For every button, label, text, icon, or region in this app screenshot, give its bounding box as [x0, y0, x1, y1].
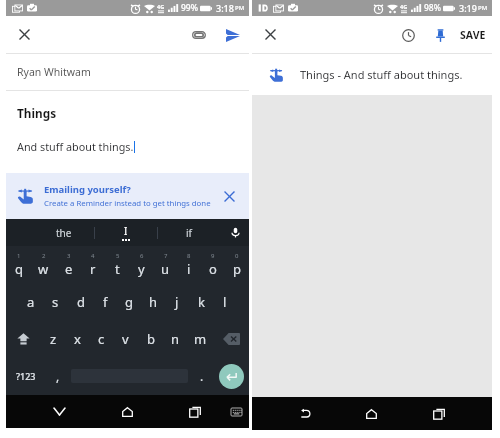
button[interactable]: j [165, 283, 189, 320]
button[interactable]: SAVE [460, 28, 486, 42]
staticText: PM [478, 4, 488, 12]
staticText: t [115, 260, 120, 278]
button[interactable]: Home [93, 395, 161, 428]
button[interactable]: Backspace [213, 320, 249, 357]
staticText: c [98, 330, 105, 348]
staticText: if [186, 226, 193, 240]
button[interactable]: Back [272, 397, 338, 430]
staticText: 99% [181, 2, 198, 14]
button[interactable]: Dismiss [214, 181, 244, 211]
button[interactable]: Voice input [221, 219, 249, 246]
button[interactable]: c [89, 320, 113, 357]
button[interactable]: Shift [6, 320, 41, 357]
staticText: 4G [157, 3, 165, 10]
button[interactable]: , [46, 357, 69, 395]
button[interactable]: 5 [105, 246, 129, 283]
button[interactable]: Set time [392, 19, 424, 51]
button[interactable]: Switch keyboard [223, 395, 249, 428]
staticText: b [147, 330, 155, 348]
button[interactable]: n [163, 320, 188, 357]
staticText: h [149, 293, 158, 311]
button[interactable]: Enter [219, 364, 244, 389]
staticText: v [122, 330, 129, 348]
button[interactable]: Emailing yourself? [6, 173, 249, 219]
button[interactable]: 1 [6, 246, 31, 283]
staticText: d [77, 293, 85, 311]
staticText: 3:19 [459, 2, 477, 14]
staticText: 0 [235, 252, 239, 260]
staticText: 5 [116, 252, 120, 260]
button[interactable]: . [190, 357, 213, 395]
button[interactable]: z [41, 320, 65, 357]
staticText: Things - And stuff about things. [300, 67, 463, 82]
button[interactable]: 2 [31, 246, 56, 283]
button[interactable]: l [213, 283, 237, 320]
button[interactable]: s [43, 283, 68, 320]
button[interactable]: Send [217, 19, 249, 51]
button[interactable]: 7 [153, 246, 177, 283]
button[interactable]: Home [338, 397, 405, 430]
button[interactable]: 0 [225, 246, 249, 283]
staticText: Create a Reminder instead to get things … [44, 198, 211, 209]
button[interactable]: 3 [56, 246, 81, 283]
staticText: 6 [140, 252, 144, 260]
staticText: PM [235, 4, 245, 12]
staticText: . [200, 368, 204, 384]
staticText: z [50, 330, 57, 348]
button[interactable]: Attach file [183, 19, 215, 51]
button[interactable]: b [138, 320, 163, 357]
button[interactable]: Recent apps [161, 395, 229, 428]
staticText: o [209, 260, 217, 278]
button[interactable]: d [68, 283, 93, 320]
staticText: e [65, 260, 73, 278]
button[interactable]: I [95, 219, 157, 246]
button[interactable]: Recent apps [405, 397, 472, 430]
staticText: f [103, 293, 108, 311]
staticText: s [52, 293, 59, 311]
button[interactable]: a [18, 283, 43, 320]
button[interactable]: the [33, 219, 94, 246]
staticText: g [125, 293, 133, 311]
button[interactable]: Close [6, 16, 43, 53]
button[interactable]: g [117, 283, 141, 320]
staticText: the [56, 226, 72, 240]
button[interactable]: f [93, 283, 117, 320]
button[interactable]: Back [26, 395, 93, 428]
button[interactable]: h [141, 283, 165, 320]
staticText: j [175, 293, 179, 311]
button[interactable]: x [65, 320, 89, 357]
staticText: p [233, 260, 241, 278]
staticText: i [187, 260, 191, 278]
button[interactable]: 8 [177, 246, 201, 283]
staticText: ?123 [16, 370, 36, 382]
staticText: 3 [67, 252, 71, 260]
button[interactable]: if [158, 219, 220, 246]
button[interactable]: Close [252, 16, 289, 53]
staticText: n [171, 330, 180, 348]
staticText: 9 [211, 252, 215, 260]
button[interactable]: 6 [129, 246, 153, 283]
button[interactable]: m [188, 320, 213, 357]
button[interactable]: Pin [424, 19, 456, 51]
button[interactable]: v [113, 320, 138, 357]
button[interactable]: 4 [81, 246, 105, 283]
button[interactable]: k [189, 283, 213, 320]
staticText: q [15, 260, 23, 278]
staticText: 1 [17, 252, 21, 260]
staticText: y [138, 260, 145, 278]
staticText: SAVE [460, 28, 486, 42]
staticText: 7 [164, 252, 168, 260]
button[interactable]: ?123 [6, 357, 46, 395]
staticText: And stuff about things. [17, 139, 134, 154]
staticText: u [161, 260, 170, 278]
button[interactable]: 9 [201, 246, 225, 283]
staticText: 4G [400, 3, 408, 10]
staticText: I [124, 224, 128, 238]
staticText: k [198, 293, 205, 311]
staticText: 2 [42, 252, 46, 260]
staticText: 8 [187, 252, 191, 260]
staticText: 98% [424, 2, 441, 14]
staticText: Emailing yourself? [44, 183, 131, 196]
staticText: 3:18 [216, 2, 234, 14]
